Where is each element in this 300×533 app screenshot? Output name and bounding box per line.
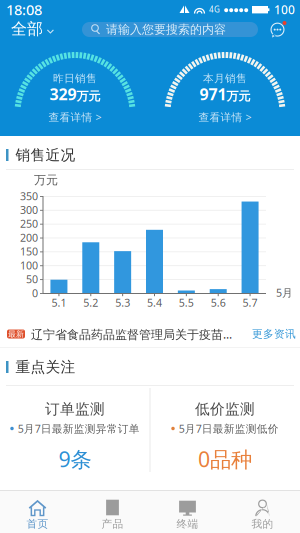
staticText: 5.1 [51,295,66,310]
staticText: 辽宁省食品药品监督管理局关于疫苗生产 [31,326,240,342]
staticText: 本月销售 [203,72,247,85]
staticText: 329 [49,83,76,105]
button[interactable]: 查看详情 > [0,109,150,125]
staticText: 首页 [26,517,48,530]
staticText: 终端 [176,517,198,530]
staticText: 0 [32,286,38,300]
staticText: 订单监测 [45,400,105,418]
staticText: 请输入您要搜索的内容 [106,22,226,37]
staticText: 昨日销售 [53,72,97,85]
button[interactable]: 全部 [0,17,62,41]
staticText: 万元 [226,89,250,103]
staticText: 0品种 [198,445,252,473]
staticText: 重点关注 [15,358,75,376]
staticText: 5.5 [179,295,194,310]
staticText: 我的 [251,517,273,530]
staticText: 更多资讯 [252,327,296,340]
staticText: 150 [20,244,38,258]
staticText: 50 [26,272,38,286]
staticText: 最新 [8,329,24,339]
staticText: 9条 [58,445,91,473]
staticText: 低价监测 [195,400,255,418]
button[interactable]: 产品 [75,491,150,533]
staticText: 5.4 [147,295,162,310]
staticText: 万元 [76,89,100,103]
staticText: 4G [209,4,220,15]
staticText: 查看详情 > [198,110,251,124]
staticText: 全部 [11,19,43,39]
staticText: 5.3 [115,295,130,310]
staticText: 300 [20,203,38,217]
staticText: 5.7 [243,295,258,310]
staticText: 200 [20,230,38,245]
staticText: 5月7日最新监测异常订单 [18,421,140,436]
staticText: 产品 [101,517,123,530]
staticText: 18:08 [6,0,42,19]
button[interactable]: Messages [263,16,293,45]
staticText: 350 [20,189,38,203]
staticText: 100 [274,1,295,17]
button[interactable]: 终端 [150,491,225,533]
button[interactable]: 首页 [0,491,75,533]
staticText: 万元 [34,173,58,187]
staticText: 5.6 [211,295,226,310]
staticText: 100 [20,258,38,272]
staticText: 971 [199,83,226,105]
staticText: 5.2 [83,295,98,310]
button[interactable]: 我的 [225,491,300,533]
button[interactable]: 查看详情 > [150,109,300,125]
button[interactable]: 订单监测 [0,386,150,490]
staticText: 250 [20,217,38,231]
staticText: 5月 [276,285,293,300]
staticText: 销售近况 [15,146,75,164]
button[interactable]: 低价监测 [150,386,300,490]
staticText: 查看详情 > [48,110,101,124]
staticText: 5月7日最新监测低价 [179,421,279,436]
button[interactable]: 最新 [0,312,300,348]
